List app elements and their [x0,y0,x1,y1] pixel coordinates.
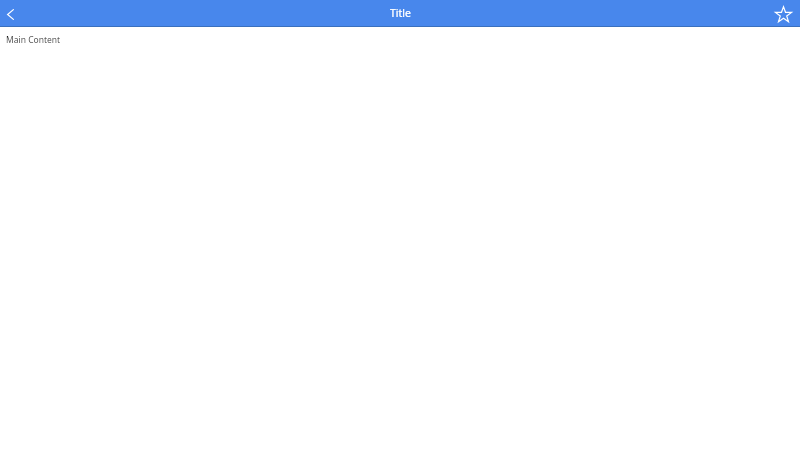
staticText: Main Content [6,34,61,46]
button[interactable]: Back [0,4,20,24]
button[interactable]: Favorite [772,4,794,26]
staticText: Title [390,6,411,20]
